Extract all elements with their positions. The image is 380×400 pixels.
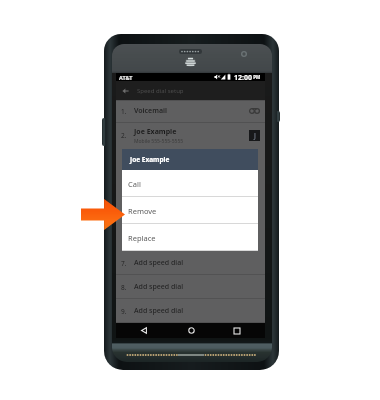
button[interactable]: 7. xyxy=(116,251,265,275)
staticText: 1. xyxy=(121,107,127,116)
button[interactable]: 8. xyxy=(116,275,265,299)
staticText: Add speed dial xyxy=(134,306,184,316)
staticText: 12:00 xyxy=(234,73,252,81)
staticText: Joe Example xyxy=(130,155,170,164)
staticText: 9. xyxy=(121,307,127,316)
staticText: J xyxy=(254,131,256,141)
staticText: Speed dial setup xyxy=(137,87,184,95)
staticText: Replace xyxy=(128,233,156,243)
staticText: Voicemail xyxy=(134,106,167,116)
button[interactable]: 9. xyxy=(116,299,265,323)
button[interactable]: 1. xyxy=(116,100,265,122)
staticText: Remove xyxy=(128,206,157,216)
staticText: 7. xyxy=(121,259,127,268)
button[interactable]: Remove xyxy=(122,197,258,224)
staticText: Joe Example xyxy=(134,127,177,137)
staticText: 8. xyxy=(121,283,127,292)
staticText: Mobile 555-555-5555 xyxy=(134,138,184,145)
button[interactable]: Replace xyxy=(122,224,258,251)
staticText: PM xyxy=(252,74,261,80)
button[interactable]: 2. xyxy=(116,122,265,149)
button[interactable]: Back xyxy=(130,323,158,338)
staticText: 2. xyxy=(121,131,127,140)
staticText: Add speed dial xyxy=(134,258,184,268)
staticText: Add speed dial xyxy=(134,282,184,292)
button[interactable]: Recent apps xyxy=(223,323,251,338)
staticText: AT&T xyxy=(119,74,133,81)
button[interactable]: Call xyxy=(122,170,258,197)
button[interactable]: Home xyxy=(177,323,205,338)
button[interactable]: Navigate up xyxy=(116,81,134,100)
staticText: Call xyxy=(128,179,141,189)
